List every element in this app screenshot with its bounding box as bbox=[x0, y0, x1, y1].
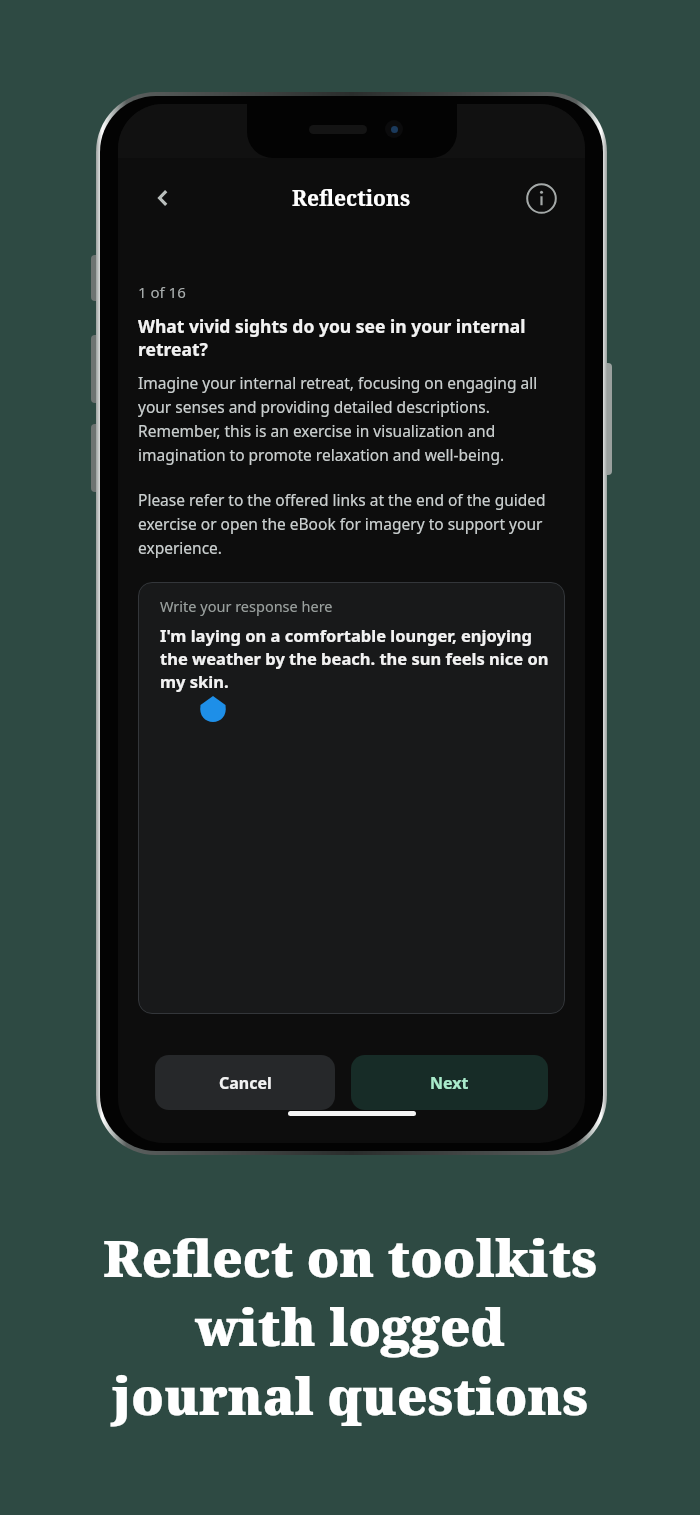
staticText: Reflect on toolkits bbox=[103, 1222, 597, 1291]
button[interactable]: Next bbox=[351, 1055, 548, 1110]
staticText: Please refer to the offered links at the… bbox=[138, 489, 565, 558]
staticText: Reflections bbox=[292, 184, 411, 213]
staticText: What vivid sights do you see in your int… bbox=[138, 314, 565, 361]
staticText: I'm laying on a comfortable lounger, enj… bbox=[160, 624, 549, 693]
staticText: 1 of 16 bbox=[138, 282, 186, 302]
staticText: with logged bbox=[195, 1291, 505, 1360]
button[interactable]: Cancel bbox=[155, 1055, 335, 1110]
staticText: Next bbox=[430, 1072, 469, 1094]
staticText: Cancel bbox=[219, 1072, 272, 1094]
button[interactable]: Write your response here bbox=[138, 582, 565, 1014]
staticText: journal questions bbox=[112, 1360, 588, 1429]
button[interactable]: Information bbox=[521, 178, 561, 218]
button[interactable]: Back bbox=[144, 179, 182, 217]
staticText: Write your response here bbox=[160, 596, 333, 616]
staticText: Imagine your internal retreat, focusing … bbox=[138, 372, 565, 465]
